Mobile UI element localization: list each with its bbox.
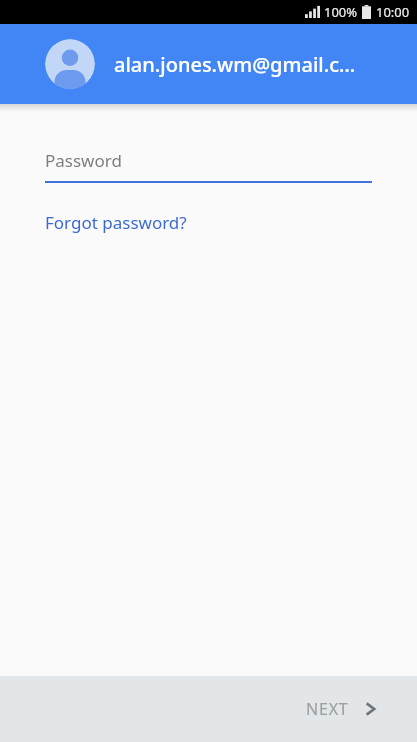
staticText: 10:00 xyxy=(376,3,410,21)
button[interactable]: Forgot password? xyxy=(45,211,187,234)
staticText: alan.jones.wm@gmail.c… xyxy=(114,51,356,78)
button[interactable]: alan.jones.wm@gmail.c… xyxy=(0,24,417,104)
staticText: Password xyxy=(45,149,122,172)
button[interactable]: NEXT xyxy=(282,684,417,734)
other: Next xyxy=(363,702,377,716)
staticText: 100% xyxy=(324,3,358,21)
staticText: NEXT xyxy=(306,698,349,720)
button[interactable]: Password xyxy=(45,149,372,183)
staticText: Forgot password? xyxy=(45,211,187,234)
